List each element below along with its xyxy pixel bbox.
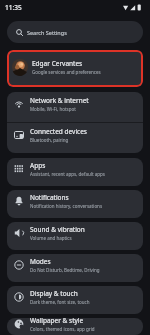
staticText: Mobile, Wi-Fi, hotspot [30,106,76,112]
button[interactable]: Apps [7,158,143,186]
staticText: Google services and preferences [32,69,101,75]
staticText: Do Not Disturb, Bedtime, Driving [30,267,100,273]
staticText: Modes [30,257,51,266]
staticText: Edgar Cervantes [32,59,83,68]
staticText: Network & internet [30,96,89,105]
button[interactable]: Wallpaper & style [7,318,143,335]
button[interactable]: Connected devices [7,123,143,153]
button[interactable]: Modes [7,254,143,282]
button[interactable]: Edgar Cervantes [7,50,143,87]
button[interactable]: Network & internet [7,92,143,122]
button[interactable]: Search Settings [7,21,143,43]
staticText: Sound & vibration [30,225,85,234]
staticText: 11:35 [5,3,22,12]
button[interactable]: Sound & vibration [7,222,143,250]
staticText: Connected devices [30,127,87,136]
staticText: Display & touch [30,289,78,298]
button[interactable]: Display & touch [7,286,143,314]
staticText: Search Settings [27,29,67,36]
staticText: Colors, themed icons, app grid [30,326,95,332]
staticText: Apps [30,161,46,170]
button[interactable]: Notifications [7,190,143,218]
staticText: Notifications [30,193,69,202]
staticText: Wallpaper & style [30,318,84,325]
staticText: Dark theme, font size, touch [30,299,90,305]
staticText: Volume and haptics [30,235,72,241]
staticText: Assistant, recent apps, default apps [30,171,105,177]
staticText: Notification history, conversations [30,203,103,209]
staticText: Bluetooth, pairing [30,137,69,143]
